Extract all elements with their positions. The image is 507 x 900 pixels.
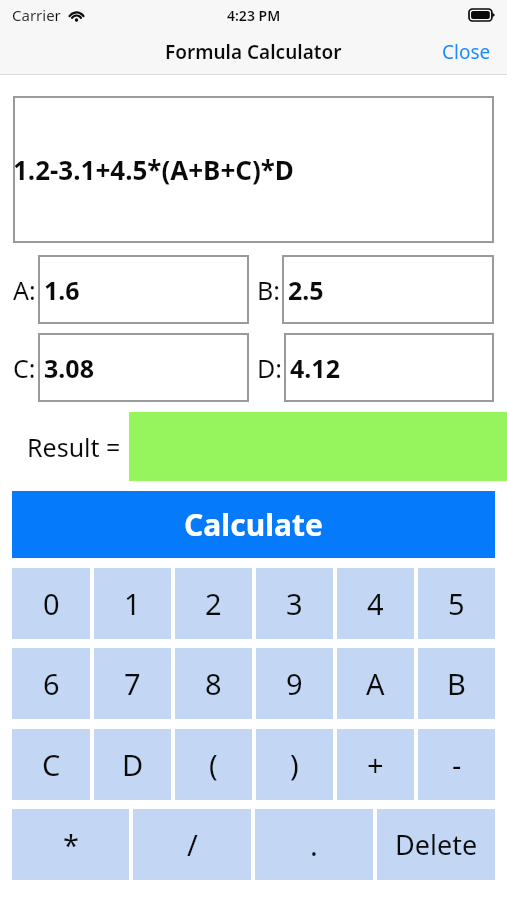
button[interactable]: B (418, 648, 495, 719)
staticText: D: (257, 351, 282, 385)
staticText: C (42, 745, 61, 784)
staticText: 1 (124, 584, 141, 623)
staticText: ) (290, 745, 299, 784)
button[interactable]: 5 (418, 568, 495, 639)
staticText: 2 (205, 584, 222, 623)
button[interactable]: Close (426, 31, 507, 73)
staticText: D (122, 745, 144, 784)
staticText: C: (13, 351, 36, 385)
button[interactable]: 1.2-3.1+4.5*(A+B+C)*D (13, 96, 494, 243)
staticText: Delete (395, 826, 478, 863)
staticText: 7 (124, 664, 141, 703)
staticText: 4:23 PM (227, 6, 281, 25)
staticText: 4 (367, 584, 384, 623)
staticText: 2.5 (288, 273, 324, 307)
button[interactable]: 4.12 (284, 333, 494, 402)
button[interactable]: 0 (12, 568, 90, 639)
staticText: Result = (27, 430, 121, 464)
staticText: + (367, 745, 384, 784)
staticText: 3 (286, 584, 303, 623)
staticText: 1.6 (44, 273, 80, 307)
staticText: Carrier (12, 5, 61, 25)
staticText: 6 (43, 664, 60, 703)
button[interactable]: 1 (94, 568, 171, 639)
button[interactable]: * (12, 809, 129, 880)
button[interactable]: 9 (256, 648, 333, 719)
button[interactable]: 3.08 (38, 333, 249, 402)
button[interactable]: 6 (12, 648, 90, 719)
button[interactable]: 7 (94, 648, 171, 719)
staticText: * (63, 825, 79, 864)
staticText: . (310, 825, 318, 864)
button[interactable]: C (12, 729, 90, 800)
staticText: B: (257, 273, 280, 307)
staticText: Formula Calculator (165, 39, 342, 65)
button[interactable]: 4 (337, 568, 414, 639)
staticText: 4.12 (290, 351, 340, 385)
staticText: 8 (205, 664, 222, 703)
button[interactable]: 2.5 (282, 255, 494, 324)
button[interactable]: 1.6 (38, 255, 249, 324)
button[interactable]: 8 (175, 648, 252, 719)
button[interactable]: D (94, 729, 171, 800)
staticText: Calculate (184, 504, 323, 545)
staticText: B (447, 664, 466, 703)
staticText: A (366, 664, 385, 703)
button[interactable]: ) (256, 729, 333, 800)
staticText: 5 (448, 584, 465, 623)
button[interactable]: + (337, 729, 414, 800)
staticText: ( (209, 745, 218, 784)
staticText: A: (13, 273, 36, 307)
staticText: 0 (43, 584, 60, 623)
button[interactable]: . (255, 809, 373, 880)
staticText: 1.2-3.1+4.5*(A+B+C)*D (13, 152, 294, 187)
button[interactable]: / (133, 809, 251, 880)
button[interactable]: 2 (175, 568, 252, 639)
button[interactable]: - (418, 729, 495, 800)
button[interactable]: Delete (377, 809, 495, 880)
staticText: Close (442, 39, 491, 65)
staticText: / (187, 825, 198, 864)
button[interactable]: Calculate (12, 491, 495, 558)
staticText: 3.08 (44, 351, 94, 385)
button[interactable]: 3 (256, 568, 333, 639)
staticText: - (452, 745, 462, 784)
button[interactable]: A (337, 648, 414, 719)
button[interactable]: ( (175, 729, 252, 800)
staticText: 9 (286, 664, 303, 703)
